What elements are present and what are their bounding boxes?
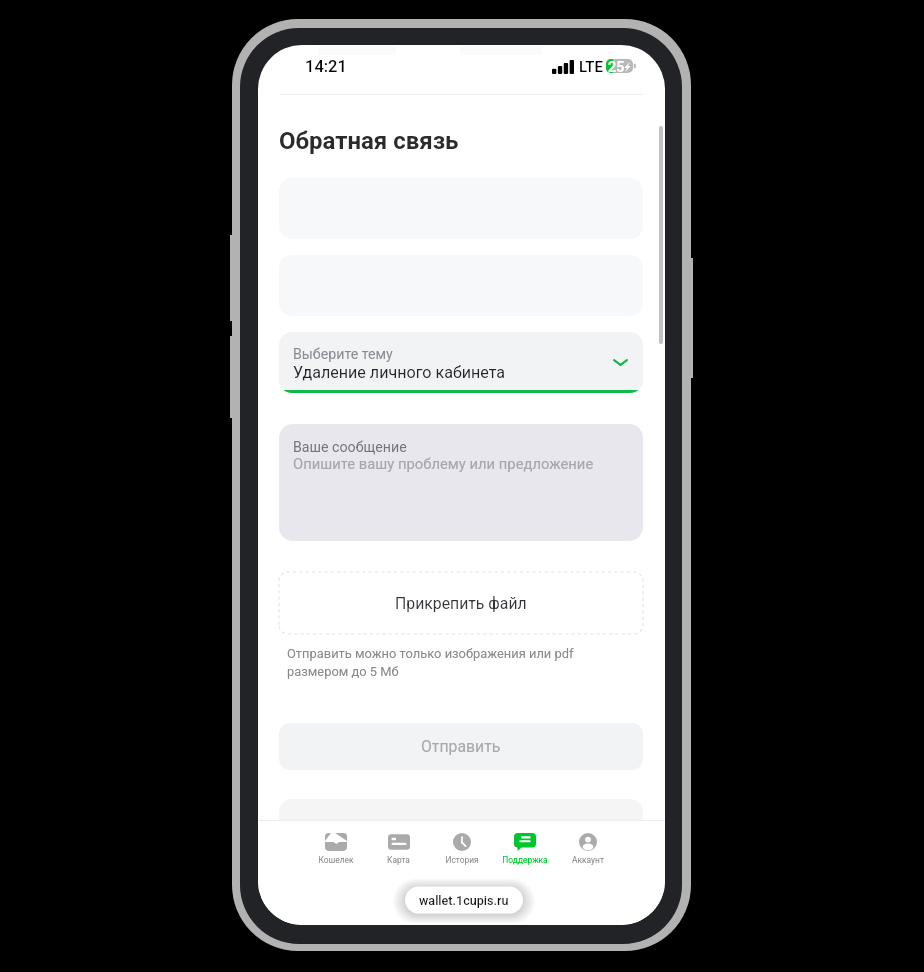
staticText: Поддержка: [502, 855, 548, 865]
staticText: 25: [608, 59, 625, 73]
button[interactable]: История: [430, 821, 493, 871]
button[interactable]: Отправить: [279, 723, 643, 770]
button[interactable]: Ваше сообщение: [279, 424, 643, 541]
staticText: Карта: [387, 855, 410, 865]
staticText: История: [445, 855, 479, 865]
button[interactable]: wallet.1cupis.ru: [405, 887, 523, 914]
button[interactable]: Поддержка: [493, 821, 556, 871]
staticText: Аккаунт: [572, 855, 604, 865]
staticText: LTE: [579, 58, 603, 76]
button[interactable]: Карта: [367, 821, 430, 871]
button[interactable]: Выберите тему: [279, 332, 643, 393]
button[interactable]: Кошелек: [304, 821, 367, 871]
staticText: Обратная связь: [279, 127, 459, 155]
button[interactable]: Аккаунт: [556, 821, 619, 871]
button[interactable]: Прикрепить файл: [279, 572, 643, 634]
staticText: Кошелек: [318, 855, 354, 865]
staticText: Удаление личного кабинета: [293, 363, 506, 382]
staticText: Прикрепить файл: [395, 594, 527, 613]
staticText: Отправить можно только изображения или p…: [287, 646, 574, 679]
staticText: Опишите вашу проблему или предложение: [293, 455, 594, 472]
staticText: 14:21: [305, 57, 347, 76]
staticText: Выберите тему: [293, 346, 393, 363]
staticText: Ваше сообщение: [293, 439, 407, 456]
staticText: Отправить: [421, 737, 501, 756]
staticText: wallet.1cupis.ru: [419, 893, 509, 908]
